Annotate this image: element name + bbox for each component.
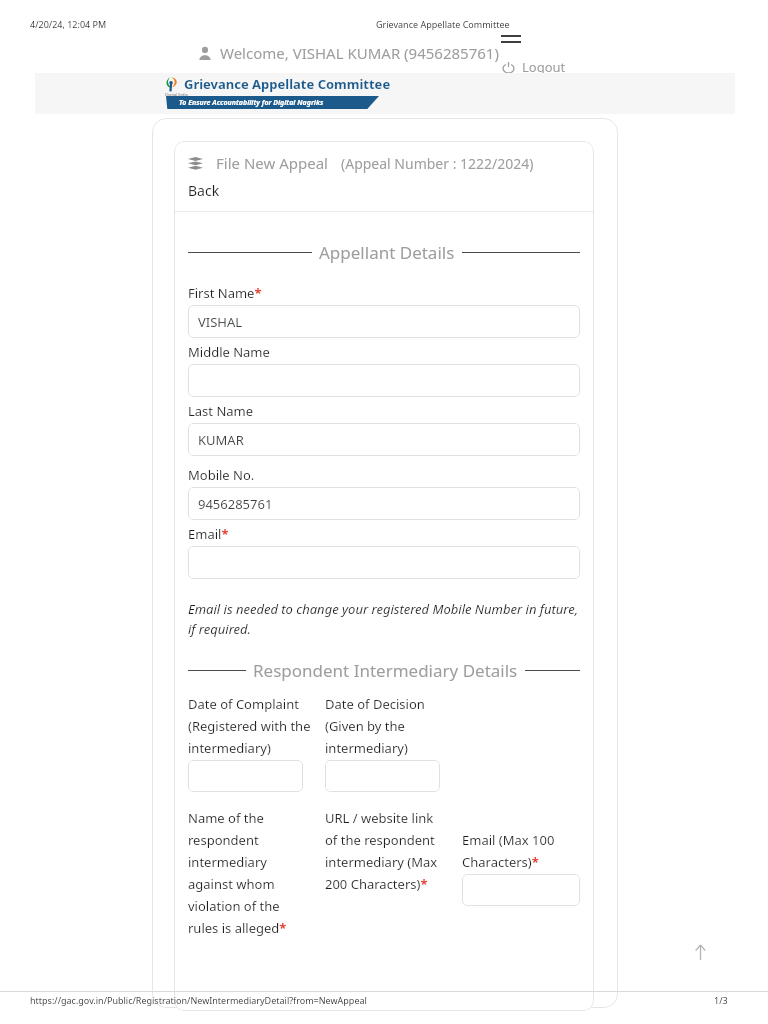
staticText: Email*	[188, 525, 229, 543]
button[interactable]: Back	[188, 181, 220, 200]
staticText: First Name*	[188, 284, 262, 302]
button[interactable]: Scroll to top	[688, 940, 712, 964]
button[interactable]: 9456285761	[188, 487, 580, 520]
staticText: Date of Decision (Given by the intermedi…	[325, 695, 448, 757]
staticText: 9456285761	[198, 495, 273, 513]
staticText: Welcome, VISHAL KUMAR (9456285761)	[220, 43, 499, 63]
staticText: 4/20/24, 12:04 PM	[30, 18, 107, 30]
staticText: Name of the respondent intermediary agai…	[188, 809, 311, 937]
button[interactable]	[325, 760, 440, 792]
staticText: KUMAR	[198, 431, 244, 449]
staticText: 1/3	[714, 994, 728, 1006]
staticText: Appellant Details	[319, 241, 455, 264]
staticText: https://gac.gov.in/Public/Registration/N…	[30, 994, 367, 1006]
button[interactable]	[188, 760, 303, 792]
button[interactable]	[188, 546, 580, 579]
staticText: Logout	[522, 58, 566, 76]
staticText: URL / website link of the respondent int…	[325, 809, 448, 893]
button[interactable]: Menu	[501, 35, 521, 49]
staticText: To Ensure Accountability for Digital Nag…	[179, 98, 324, 108]
staticText: Grievance Appellate Committee	[376, 18, 510, 30]
staticText: Date of Complaint (Registered with the i…	[188, 695, 311, 757]
staticText: VISHAL	[198, 313, 243, 331]
staticText: Mobile No.	[188, 466, 255, 484]
staticText: Grievance Appellate Committee	[184, 75, 391, 93]
staticText: Respondent Intermediary Details	[253, 659, 518, 682]
button[interactable]: VISHAL	[188, 305, 580, 338]
staticText: File New Appeal	[216, 153, 328, 173]
button[interactable]: Logout	[503, 58, 566, 76]
staticText: (Appeal Number : 1222/2024)	[341, 154, 534, 173]
staticText: Email is needed to change your registere…	[188, 600, 580, 638]
staticText: Digital India	[165, 92, 188, 97]
button[interactable]	[188, 364, 580, 397]
button[interactable]: KUMAR	[188, 423, 580, 456]
staticText: Back	[188, 181, 220, 200]
staticText: Middle Name	[188, 343, 270, 361]
staticText: Last Name	[188, 402, 254, 420]
button[interactable]: Welcome, VISHAL KUMAR (9456285761)	[198, 43, 499, 63]
staticText: Email (Max 100 Characters)*	[462, 831, 580, 871]
button[interactable]	[462, 874, 580, 906]
